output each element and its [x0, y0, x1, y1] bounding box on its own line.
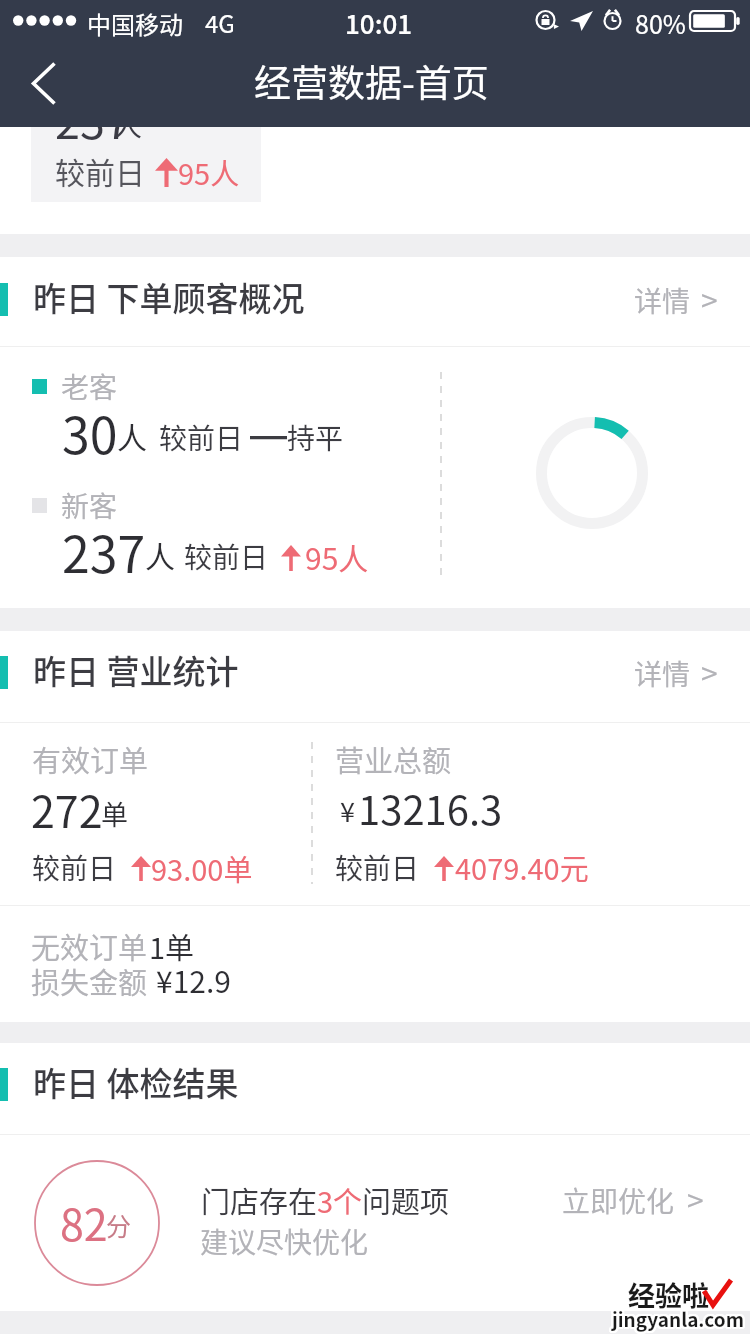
staticText: 经验啦	[626, 1276, 707, 1315]
staticText: jingyanla.com	[612, 1305, 744, 1333]
staticText: 昨日 体检结果	[33, 1058, 239, 1106]
staticText: jingyanla.com	[612, 1307, 744, 1334]
staticText: 经验啦	[627, 1274, 708, 1313]
staticText: 昨日 营业统计	[33, 646, 239, 694]
staticText: jingyanla.com	[611, 1303, 743, 1331]
staticText: 经验啦	[628, 1276, 709, 1315]
staticText: jingyanla.com	[610, 1306, 742, 1334]
staticText: jingyanla.com	[614, 1306, 746, 1334]
staticText: 经验啦	[630, 1274, 711, 1313]
staticText: 经验啦	[630, 1276, 711, 1315]
staticText: 较前日	[159, 417, 244, 458]
staticText: 13216.3	[358, 779, 503, 837]
staticText: jingyanla.com	[611, 1306, 743, 1334]
staticText: jingyanla.com	[611, 1304, 743, 1332]
staticText: 经验啦	[627, 1276, 708, 1315]
staticText: jingyanla.com	[612, 1304, 744, 1332]
button[interactable]: 立即优化	[548, 1165, 718, 1236]
staticText: 持平	[287, 417, 344, 458]
staticText: jingyanla.com	[611, 1307, 743, 1334]
button[interactable]: 返回	[0, 40, 88, 127]
staticText: 建议尽快优化	[200, 1221, 369, 1262]
staticText: 经验啦	[627, 1275, 708, 1314]
staticText: 新客	[61, 485, 118, 526]
staticText: 门店存在3个问题项	[201, 1179, 450, 1221]
staticText: jingyanla.com	[611, 1305, 743, 1333]
staticText: 损失金额	[31, 960, 148, 1002]
staticText: 中国移动	[87, 6, 183, 41]
staticText: jingyanla.com	[613, 1307, 745, 1334]
staticText: 95人	[305, 535, 369, 578]
staticText: >	[701, 277, 718, 320]
staticText: >	[701, 650, 718, 693]
staticText: 较前日	[55, 149, 145, 192]
staticText: ¥12.9	[156, 958, 231, 1001]
staticText: 详情	[634, 653, 691, 694]
staticText: 较前日	[184, 536, 269, 577]
button[interactable]: 详情	[620, 638, 732, 709]
staticText: 经验啦	[629, 1274, 710, 1313]
staticText: jingyanla.com	[610, 1305, 742, 1333]
staticText: 237	[55, 87, 130, 152]
staticText: 82	[60, 1191, 108, 1253]
staticText: 昨日 下单顾客概况	[33, 273, 305, 321]
staticText: ¥	[340, 791, 355, 830]
staticText: 人	[113, 103, 143, 145]
button[interactable]	[0, 1135, 750, 1310]
staticText: jingyanla.com	[612, 1305, 744, 1333]
staticText: 4079.40元	[455, 846, 589, 888]
staticText: 经验啦	[629, 1276, 710, 1315]
staticText: 单	[101, 794, 128, 833]
staticText: 80%	[635, 5, 686, 41]
staticText: 经营数据-首页	[254, 54, 489, 108]
staticText: 有效订单	[32, 738, 149, 780]
staticText: jingyanla.com	[614, 1305, 746, 1333]
staticText: 较前日	[32, 847, 117, 888]
staticText: 营业总额	[335, 738, 452, 780]
staticText: jingyanla.com	[613, 1306, 745, 1334]
button[interactable]: 详情	[620, 265, 732, 336]
staticText: 立即优化	[562, 1180, 675, 1221]
staticText: 经验啦	[629, 1275, 710, 1314]
staticText: 1单	[149, 925, 195, 967]
staticText: 较前日	[335, 847, 420, 888]
staticText: 人	[145, 533, 175, 576]
staticText: 经验啦	[628, 1274, 709, 1313]
staticText: 经验啦	[629, 1273, 710, 1312]
staticText: jingyanla.com	[612, 1303, 744, 1331]
staticText: jingyanla.com	[614, 1304, 746, 1332]
staticText: jingyanla.com	[613, 1304, 745, 1332]
staticText: 经验啦	[628, 1277, 709, 1316]
staticText: 详情	[634, 280, 691, 321]
staticText: 人	[117, 414, 147, 457]
staticText: 经验啦	[626, 1275, 707, 1314]
staticText: 经验啦	[627, 1277, 708, 1316]
staticText: 经验啦	[626, 1274, 707, 1313]
staticText: 无效订单	[31, 925, 148, 967]
staticText: 30	[62, 396, 118, 468]
staticText: 237	[62, 515, 146, 587]
staticText: 经验啦	[628, 1275, 709, 1314]
staticText: 经验啦	[629, 1277, 710, 1316]
staticText: 老客	[61, 366, 118, 407]
staticText: 93.00单	[151, 847, 253, 889]
staticText: 经验啦	[627, 1273, 708, 1312]
staticText: >	[687, 1177, 704, 1220]
staticText: jingyanla.com	[610, 1304, 742, 1332]
staticText: 95人	[178, 151, 240, 193]
staticText: 272	[31, 778, 103, 840]
staticText: 10:01	[345, 4, 413, 42]
staticText: 经验啦	[628, 1273, 709, 1312]
staticText: jingyanla.com	[613, 1303, 745, 1331]
staticText: jingyanla.com	[613, 1305, 745, 1333]
staticText: 经验啦	[628, 1275, 709, 1314]
staticText: 4G	[205, 5, 235, 40]
staticText: 分	[106, 1207, 132, 1243]
staticText: 经验啦	[630, 1275, 711, 1314]
staticText: jingyanla.com	[612, 1306, 744, 1334]
